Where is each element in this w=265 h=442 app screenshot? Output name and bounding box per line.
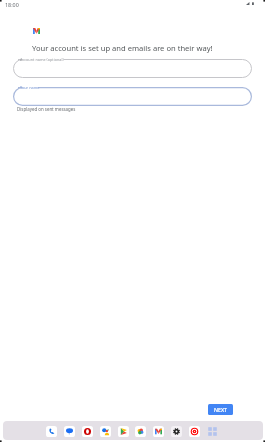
button[interactable]: Play Store: [118, 426, 129, 437]
staticText: NEXT: [214, 406, 227, 413]
button[interactable]: Contacts: [100, 426, 111, 437]
button[interactable]: Photos: [135, 426, 146, 437]
button[interactable]: Settings: [171, 426, 182, 437]
button[interactable]: Your name: [13, 87, 252, 106]
button[interactable]: NEXT: [208, 404, 233, 415]
staticText: Account name (optional): [20, 57, 64, 62]
button[interactable]: Account name (optional): [13, 59, 252, 78]
staticText: Your account is set up and emails are on…: [32, 43, 213, 53]
staticText: Displayed on sent messages: [17, 106, 76, 112]
button[interactable]: Gmail: [153, 426, 164, 437]
staticText: 18:00: [5, 1, 19, 8]
button[interactable]: Messages: [64, 426, 75, 437]
staticText: Your name: [20, 85, 40, 90]
button[interactable]: Opera: [82, 426, 93, 437]
button[interactable]: All apps: [207, 426, 218, 437]
button[interactable]: Phone: [46, 426, 57, 437]
button[interactable]: YouTube Music: [189, 426, 200, 437]
